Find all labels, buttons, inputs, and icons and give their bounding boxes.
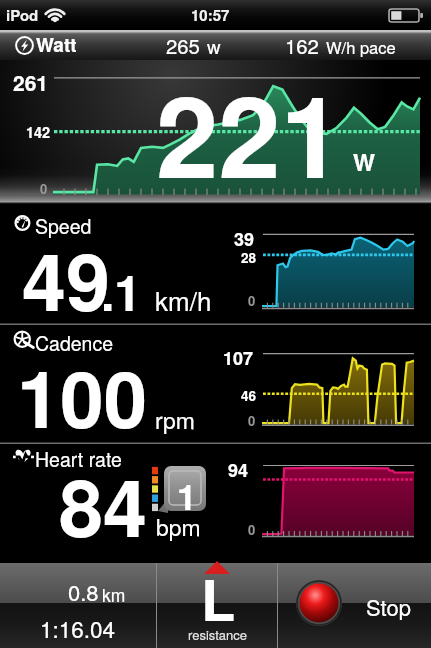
staticText: 0: [248, 411, 256, 430]
staticText: km/h: [155, 281, 212, 318]
button[interactable]: Watt: [0, 30, 431, 60]
staticText: 162: [285, 31, 319, 60]
staticText: 0: [40, 179, 48, 198]
staticText: 28: [241, 248, 257, 267]
staticText: 84: [59, 448, 147, 561]
staticText: 46: [241, 386, 257, 405]
staticText: W/h pace: [326, 35, 396, 59]
staticText: W: [353, 145, 375, 178]
staticText: 261: [13, 67, 49, 97]
button[interactable]: Cadence: [0, 325, 431, 443]
staticText: 0: [248, 520, 256, 539]
staticText: 10:57: [191, 4, 230, 25]
staticText: Heart rate: [35, 445, 122, 473]
staticText: 1: [177, 471, 197, 521]
staticText: km: [102, 582, 126, 607]
button[interactable]: 0.8: [0, 563, 156, 648]
staticText: Watt: [36, 31, 77, 58]
staticText: rpm: [155, 403, 195, 436]
staticText: w: [207, 32, 221, 59]
button[interactable]: Resistance level L: [157, 563, 277, 648]
staticText: 39: [234, 226, 255, 252]
staticText: 221: [156, 52, 343, 212]
staticText: 0.8: [68, 576, 99, 608]
staticText: Speed: [35, 212, 92, 240]
staticText: 0: [248, 291, 256, 310]
staticText: resistance: [188, 625, 248, 644]
staticText: Cadence: [35, 329, 114, 357]
button[interactable]: Heart rate: [0, 444, 431, 563]
staticText: 142: [26, 122, 51, 143]
staticText: 94: [228, 457, 249, 483]
staticText: Stop: [366, 591, 411, 623]
staticText: 107: [223, 345, 254, 371]
button[interactable]: Speed: [0, 204, 431, 324]
staticText: iPod: [6, 4, 39, 25]
staticText: bpm: [156, 510, 201, 543]
staticText: L: [201, 558, 236, 638]
staticText: 1:16.04: [40, 612, 116, 644]
staticText: 100: [17, 340, 148, 452]
staticText: 49: [22, 222, 110, 335]
button[interactable]: Stop: [278, 563, 431, 648]
staticText: 265: [166, 31, 200, 60]
staticText: .1: [101, 257, 142, 326]
